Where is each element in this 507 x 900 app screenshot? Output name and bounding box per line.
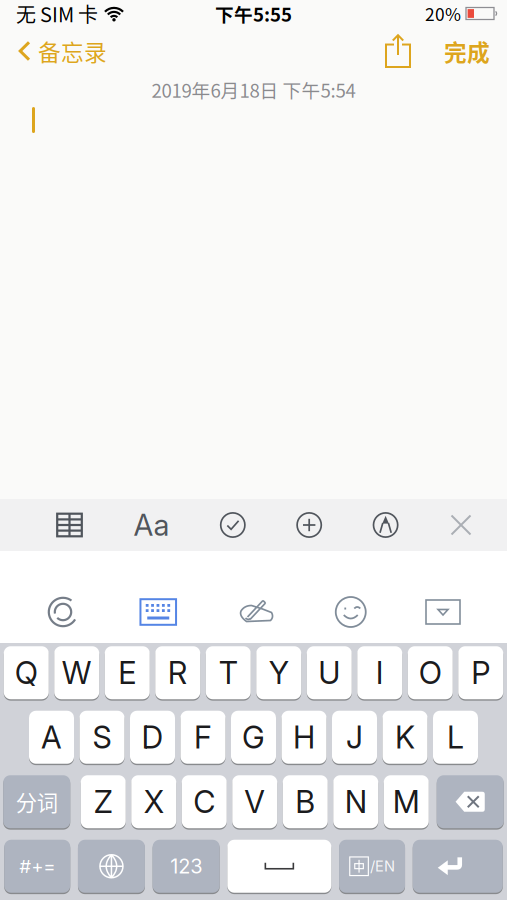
staticText: 123 [170, 854, 202, 878]
staticText: Aa [133, 507, 169, 543]
staticText: O [419, 654, 442, 691]
staticText: I [376, 654, 384, 691]
staticText: E [118, 654, 136, 691]
staticText: R [168, 654, 188, 691]
staticText: 完成 [444, 35, 490, 67]
staticText: L [447, 719, 464, 756]
staticText: C [193, 783, 215, 820]
staticText: A [41, 719, 62, 756]
staticText: S [92, 719, 111, 756]
staticText: 备忘录 [38, 35, 107, 67]
staticText: P [471, 654, 490, 691]
staticText: V [244, 783, 265, 820]
staticText: J [346, 719, 363, 756]
staticText: T [219, 654, 238, 691]
staticText: G [242, 719, 265, 756]
staticText: D [141, 719, 163, 756]
staticText: W [62, 654, 92, 691]
staticText: /EN [370, 857, 395, 875]
staticText: B [295, 783, 315, 820]
staticText: 无 SIM 卡 [16, 0, 98, 28]
staticText: 分词 [16, 786, 58, 817]
staticText: N [345, 783, 367, 820]
staticText: M [393, 783, 420, 820]
staticText: 20% [425, 1, 461, 26]
staticText: Q [15, 654, 38, 691]
staticText: 下午5:55 [215, 0, 292, 27]
staticText: H [293, 719, 315, 756]
staticText: #+= [19, 855, 55, 878]
staticText: F [194, 719, 212, 756]
staticText: K [395, 719, 415, 756]
staticText: Y [269, 654, 289, 691]
staticText: Z [94, 783, 113, 820]
staticText: X [144, 783, 164, 820]
staticText: U [318, 654, 340, 691]
staticText: 2019年6月18日 下午5:54 [151, 76, 355, 103]
